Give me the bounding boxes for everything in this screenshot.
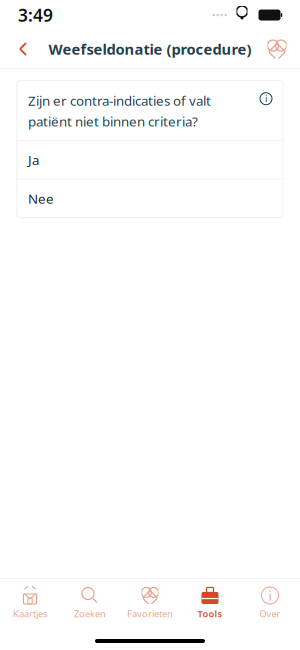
staticText: Favorieten bbox=[127, 607, 173, 620]
staticText: Nee bbox=[28, 190, 54, 207]
button[interactable]: Zoeken bbox=[60, 579, 120, 624]
staticText: Zoeken bbox=[74, 607, 106, 620]
button[interactable]: Tools bbox=[180, 579, 240, 624]
staticText: i bbox=[265, 92, 267, 105]
staticText: Weefseldonatie (procedure) bbox=[48, 39, 251, 59]
button[interactable]: Favorieten bbox=[120, 579, 180, 624]
staticText: i bbox=[268, 587, 271, 604]
button[interactable]: Kaartjes bbox=[0, 579, 60, 624]
button[interactable]: Favorite bbox=[260, 32, 294, 66]
staticText: Tools bbox=[197, 607, 222, 620]
staticText: Zijn er contra-indicaties of valt patiën… bbox=[28, 92, 211, 130]
button[interactable]: i bbox=[240, 579, 300, 624]
staticText: Ja bbox=[28, 151, 39, 169]
button[interactable]: More information bbox=[260, 92, 272, 105]
staticText: Kaartjes bbox=[13, 607, 47, 620]
button[interactable]: Ja bbox=[17, 141, 283, 179]
staticText: Over bbox=[259, 607, 280, 620]
button[interactable]: Nee bbox=[17, 179, 283, 217]
button[interactable]: Back bbox=[6, 32, 40, 66]
staticText: 3:49 bbox=[18, 3, 53, 26]
